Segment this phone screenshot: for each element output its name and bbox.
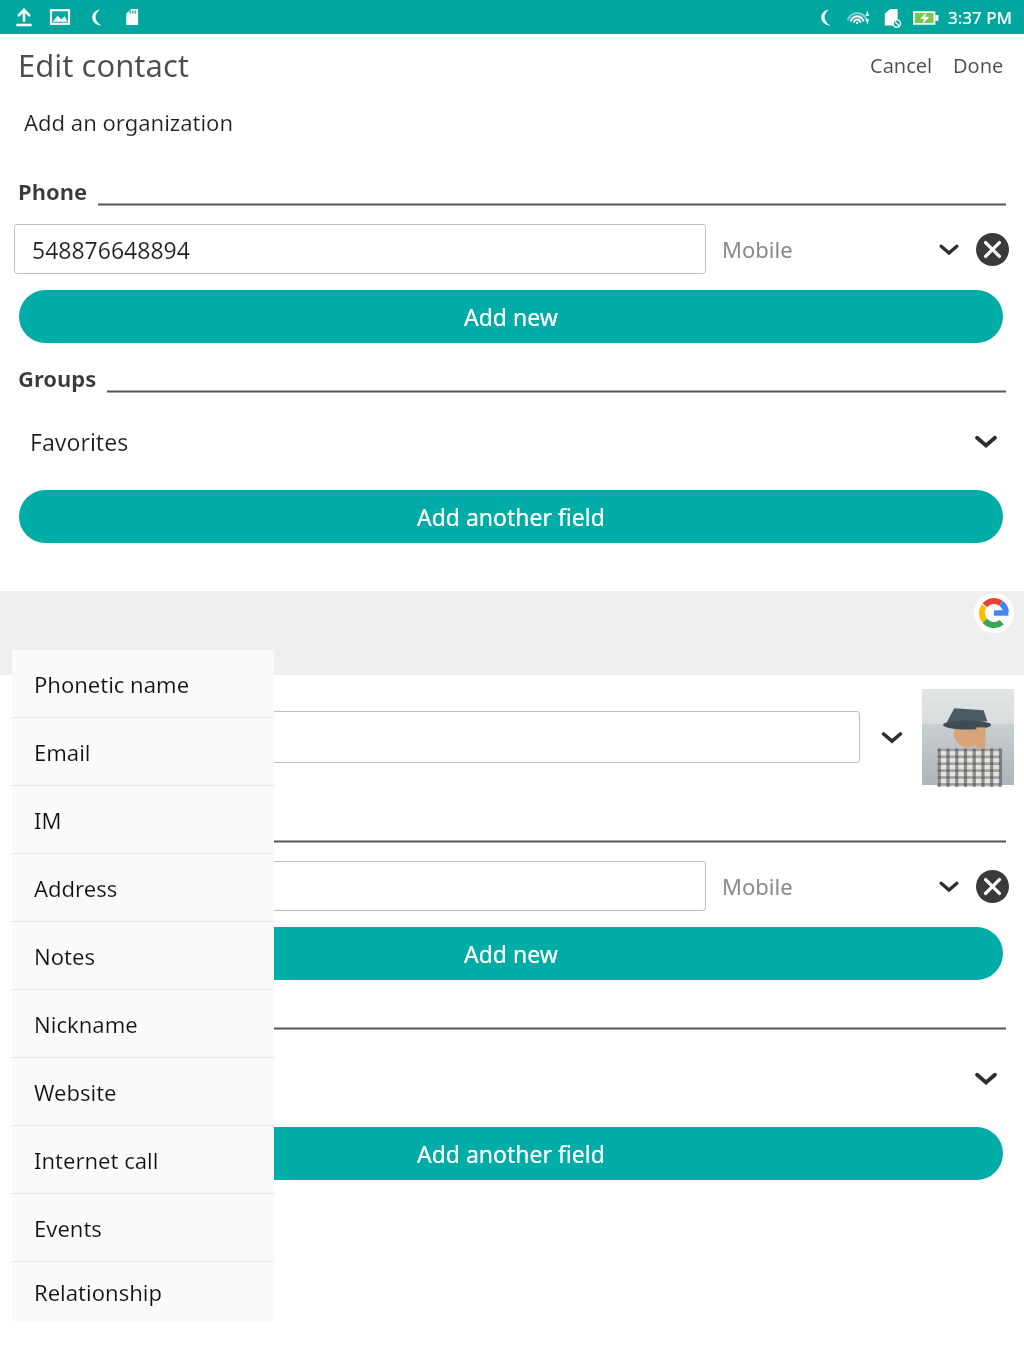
staticText: Add another field [417, 501, 605, 532]
staticText: Mobile [722, 234, 793, 264]
button[interactable]: Add an organization [0, 96, 1024, 148]
staticText: Favorites [30, 426, 129, 457]
staticText: Groups [18, 363, 97, 393]
staticText: Add new [464, 301, 558, 332]
button[interactable]: Events [12, 1194, 274, 1261]
button[interactable]: Favorites [0, 413, 1024, 469]
staticText: Cancel [870, 52, 933, 79]
button[interactable]: Cancel [862, 44, 941, 87]
staticText: Relationship [34, 1277, 162, 1307]
staticText: Nickname [34, 1009, 138, 1039]
staticText: Website [34, 1077, 117, 1107]
button[interactable]: Email [12, 718, 274, 785]
staticText: Add an organization [24, 107, 234, 137]
button[interactable]: Add another field [19, 1127, 1003, 1180]
staticText: Phone [18, 176, 88, 206]
staticText: Edit contact [18, 44, 189, 86]
button[interactable]: Google account [974, 593, 1014, 633]
staticText: Events [34, 1213, 102, 1243]
staticText: 548876648894 [32, 234, 190, 265]
button[interactable]: Add new [19, 290, 1003, 343]
staticText: Address [34, 873, 118, 903]
staticText: IM [34, 805, 62, 835]
staticText: Add another field [417, 1138, 605, 1169]
button[interactable]: Nickname [12, 990, 274, 1057]
staticText: Internet call [34, 1145, 159, 1175]
button[interactable]: Done [945, 44, 1012, 87]
button[interactable]: Address [12, 854, 274, 921]
button[interactable]: Change phone type [928, 865, 970, 907]
button[interactable]: Internet call [12, 1126, 274, 1193]
button[interactable]: Remove phone [972, 866, 1012, 906]
button[interactable] [0, 1050, 1024, 1106]
staticText: Add new [464, 938, 558, 969]
button[interactable]: Add another field [19, 490, 1003, 543]
button[interactable]: Contact photo [922, 689, 1014, 785]
button[interactable]: Add new [19, 927, 1003, 980]
button[interactable] [14, 861, 706, 911]
staticText: Notes [34, 941, 95, 971]
button[interactable]: Notes [12, 922, 274, 989]
button[interactable]: Change phone type [928, 228, 970, 270]
staticText: Mobile [722, 871, 793, 901]
button[interactable]: IM [12, 786, 274, 853]
button[interactable] [14, 711, 860, 763]
button[interactable]: 548876648894 [14, 224, 706, 274]
staticText: Done [953, 52, 1004, 79]
button[interactable]: Remove phone [972, 229, 1012, 269]
staticText: Phonetic name [34, 669, 190, 699]
button[interactable]: Expand name [870, 715, 914, 759]
staticText: 3:37 PM [948, 6, 1012, 29]
button[interactable]: Relationship [12, 1262, 274, 1322]
button[interactable]: Website [12, 1058, 274, 1125]
button[interactable]: Phonetic name [12, 650, 274, 717]
staticText: Email [34, 737, 91, 767]
